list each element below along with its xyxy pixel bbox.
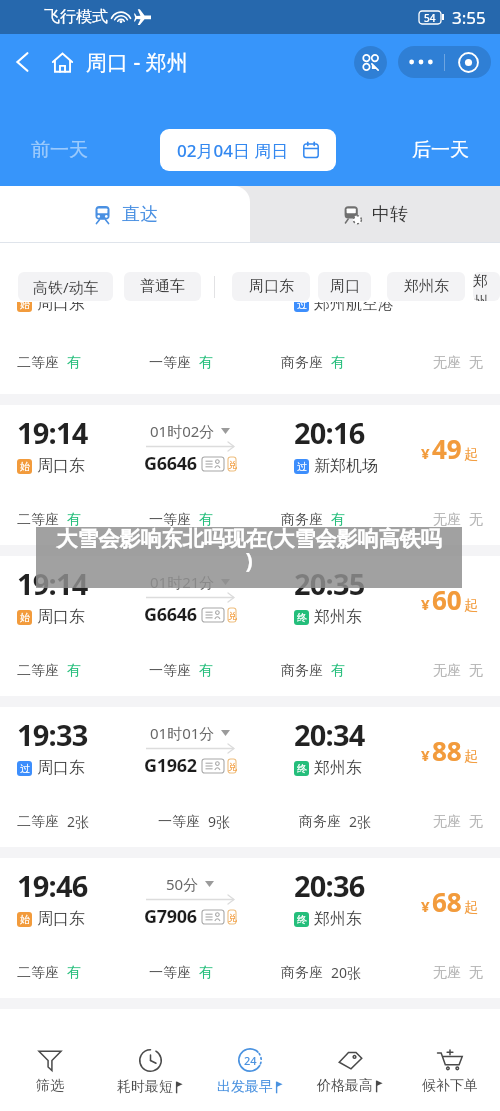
staticText: 新郑机场: [314, 456, 378, 476]
staticText: 周口东: [37, 302, 85, 314]
staticText: ¥: [421, 594, 430, 614]
button[interactable]: 耗时最短: [100, 1009, 200, 1111]
button[interactable]: 更多: [398, 46, 444, 78]
staticText: 有: [67, 964, 81, 982]
staticText: 周口东: [249, 277, 294, 296]
button[interactable]: 小程序菜单: [354, 46, 387, 79]
staticText: 60: [432, 582, 462, 617]
button[interactable]: 直达: [0, 186, 250, 243]
staticText: 始: [20, 460, 30, 473]
staticText: 有: [199, 662, 213, 680]
staticText: 商务座: [281, 354, 323, 372]
button[interactable]: 候补下单: [400, 1009, 500, 1111]
staticText: 普通车: [140, 277, 185, 296]
staticText: ¥: [421, 745, 430, 765]
staticText: 有: [331, 662, 345, 680]
button[interactable]: 24: [200, 1009, 300, 1111]
staticText: 01时21分: [150, 572, 215, 592]
staticText: 无: [469, 813, 483, 831]
button[interactable]: 02月04日 周日: [160, 129, 336, 171]
staticText: 24: [244, 1053, 257, 1068]
staticText: 有: [67, 662, 81, 680]
staticText: 起: [464, 597, 478, 615]
staticText: 过: [297, 302, 307, 311]
staticText: 19:14: [17, 413, 88, 452]
staticText: 20:34: [294, 715, 365, 754]
staticText: 前一天: [31, 138, 88, 162]
staticText: ¥: [421, 896, 430, 916]
staticText: 周口东: [37, 909, 85, 929]
staticText: 有: [331, 511, 345, 529]
staticText: 无: [469, 964, 483, 982]
staticText: 始: [20, 611, 30, 624]
staticText: 周口 - 郑州: [86, 48, 188, 77]
staticText: 郑州东: [314, 909, 362, 929]
button[interactable]: 普通车: [124, 272, 201, 301]
staticText: 88: [432, 733, 462, 768]
staticText: 一等座: [149, 662, 191, 680]
staticText: 始: [20, 302, 30, 311]
staticText: 02月04日 周日: [177, 139, 289, 162]
staticText: 有: [199, 354, 213, 372]
staticText: 无: [469, 511, 483, 529]
button[interactable]: 周口东: [232, 272, 310, 301]
staticText: 9张: [208, 812, 231, 831]
button[interactable]: 关闭: [445, 46, 491, 78]
staticText: G6646: [144, 451, 197, 476]
staticText: 无座: [433, 354, 461, 372]
staticText: 周口东: [37, 758, 85, 778]
staticText: 有: [331, 354, 345, 372]
staticText: 起: [464, 899, 478, 917]
button[interactable]: 返回: [8, 48, 36, 76]
staticText: 无座: [433, 964, 461, 982]
staticText: 后一天: [412, 138, 469, 162]
button[interactable]: 价格最高: [300, 1009, 400, 1111]
staticText: 郑州东: [314, 758, 362, 778]
button[interactable]: 筛选: [0, 1009, 100, 1111]
staticText: 过: [20, 762, 30, 775]
staticText: G1962: [144, 753, 197, 778]
staticText: 起: [464, 748, 478, 766]
staticText: 价格最高: [317, 1077, 373, 1095]
staticText: 大雪会影响东北吗现在(大雪会影响高铁吗 ): [36, 524, 462, 575]
staticText: 郑州航空港: [314, 302, 394, 314]
button[interactable]: 高铁/动车: [18, 272, 113, 301]
staticText: 无座: [433, 813, 461, 831]
button[interactable]: 后一天: [336, 129, 500, 171]
staticText: 20:35: [294, 564, 365, 603]
staticText: 耗时最短: [117, 1078, 173, 1096]
staticText: 直达: [122, 203, 158, 226]
staticText: 中转: [372, 203, 408, 226]
staticText: 49: [432, 431, 462, 466]
staticText: 始: [20, 913, 30, 926]
staticText: 2张: [349, 812, 372, 831]
staticText: 商务座: [281, 964, 323, 982]
staticText: 68: [432, 884, 462, 919]
staticText: 20张: [331, 963, 362, 982]
staticText: 商务座: [281, 662, 323, 680]
staticText: 二等座: [17, 662, 59, 680]
staticText: 3:55: [452, 6, 486, 29]
staticText: 终: [297, 913, 307, 926]
staticText: 筛选: [36, 1077, 64, 1095]
button[interactable]: 首页: [48, 48, 76, 76]
staticText: 有: [199, 964, 213, 982]
staticText: 19:46: [17, 866, 88, 905]
button[interactable]: 前一天: [0, 129, 160, 171]
staticText: ¥: [421, 443, 430, 463]
staticText: 有: [67, 511, 81, 529]
staticText: 20:16: [294, 413, 365, 452]
staticText: 二等座: [17, 813, 59, 831]
staticText: 兑: [228, 761, 236, 772]
staticText: 有: [67, 354, 81, 372]
button[interactable]: 中转: [250, 186, 500, 243]
staticText: 终: [297, 611, 307, 624]
staticText: 20:36: [294, 866, 365, 905]
staticText: 19:33: [17, 715, 88, 754]
button[interactable]: 郑州东: [387, 272, 465, 301]
staticText: 周口东: [37, 456, 85, 476]
button[interactable]: 郑州东: [473, 272, 500, 301]
staticText: 兑: [228, 610, 236, 621]
button[interactable]: 周口: [318, 272, 371, 301]
staticText: G6646: [144, 602, 197, 627]
